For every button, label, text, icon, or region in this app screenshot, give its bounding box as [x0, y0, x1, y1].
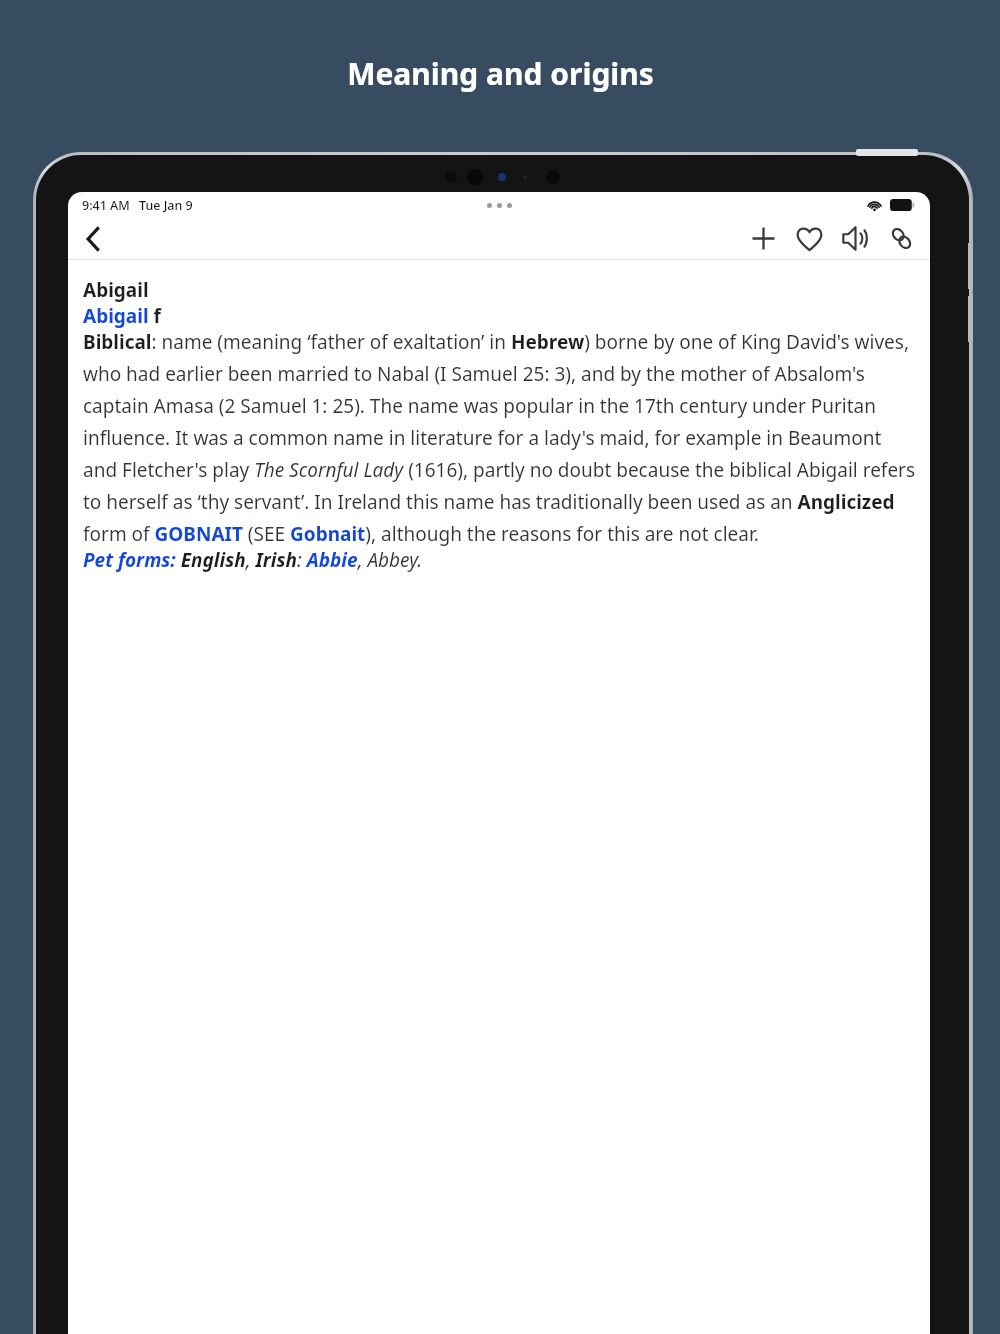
button[interactable]: Favorite: [788, 218, 830, 259]
staticText: 9:41 AM: [82, 197, 130, 214]
staticText: Meaning and origins: [347, 53, 654, 94]
button[interactable]: Back: [71, 218, 115, 259]
staticText: Abigail: [83, 277, 149, 303]
staticText: Biblical: name (meaning ‘father of exalt…: [83, 329, 916, 547]
staticText: Pet forms: English, Irish: Abbie, Abbey.: [83, 547, 423, 573]
button[interactable]: Add: [742, 218, 784, 259]
button[interactable]: Copy link: [880, 218, 922, 259]
button[interactable]: Pronounce: [834, 218, 876, 259]
staticText: Abigail f: [83, 303, 161, 329]
staticText: Tue Jan 9: [139, 197, 193, 214]
